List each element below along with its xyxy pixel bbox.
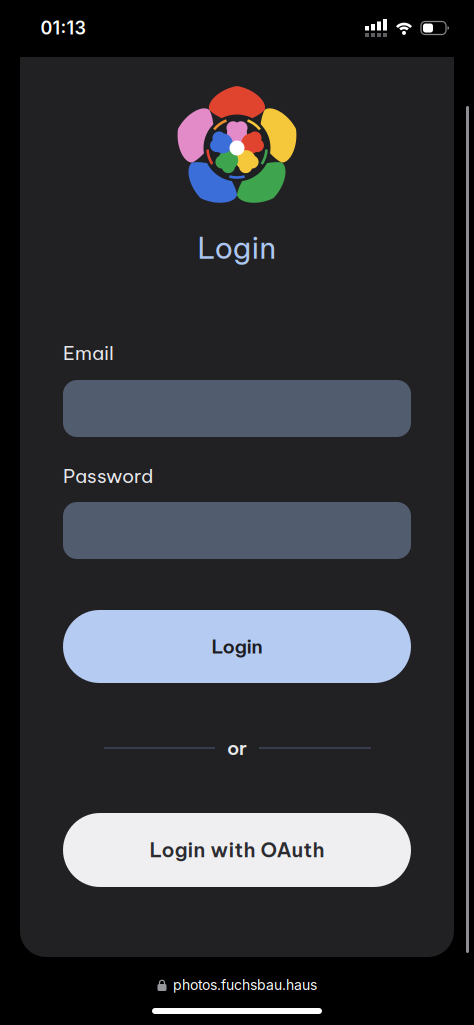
button[interactable]: Password: [63, 502, 411, 559]
staticText: Password: [63, 464, 153, 488]
staticText: Login with OAuth: [149, 837, 324, 863]
button[interactable]: Login: [63, 610, 411, 683]
staticText: Login: [211, 634, 262, 658]
button[interactable]: Email: [63, 380, 411, 437]
staticText: Email: [63, 341, 114, 365]
staticText: photos.fuchsbau.haus: [173, 976, 317, 993]
button[interactable]: Address bar: photos.fuchsbau.haus: [157, 976, 317, 993]
button[interactable]: Login with OAuth: [63, 813, 411, 887]
staticText: Login: [197, 230, 276, 266]
staticText: or: [227, 736, 247, 760]
staticText: 01:13: [40, 17, 85, 39]
